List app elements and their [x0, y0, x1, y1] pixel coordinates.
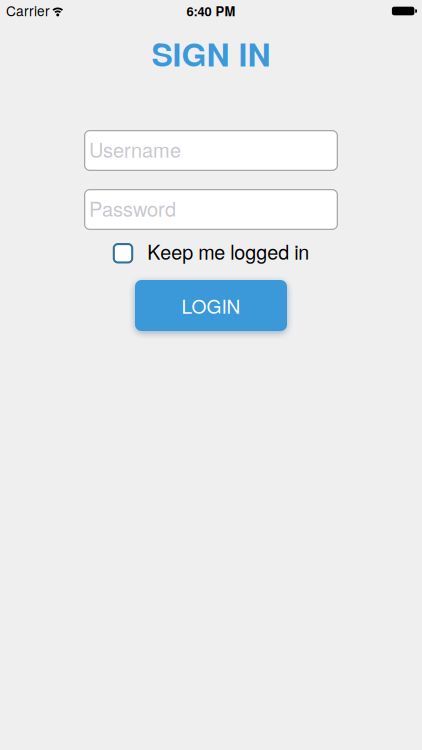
- button[interactable]: Password: [84, 189, 338, 230]
- button[interactable]: Username: [84, 130, 338, 171]
- staticText: Username: [89, 135, 181, 163]
- staticText: Carrier: [6, 0, 50, 20]
- staticText: LOGIN: [181, 292, 240, 319]
- staticText: Password: [89, 194, 176, 222]
- staticText: 6:40 PM: [186, 2, 235, 20]
- staticText: Keep me logged in: [147, 237, 309, 265]
- button[interactable]: LOGIN: [135, 280, 287, 331]
- button[interactable]: Keep me logged in: [113, 243, 309, 263]
- staticText: SIGN IN: [151, 30, 270, 76]
